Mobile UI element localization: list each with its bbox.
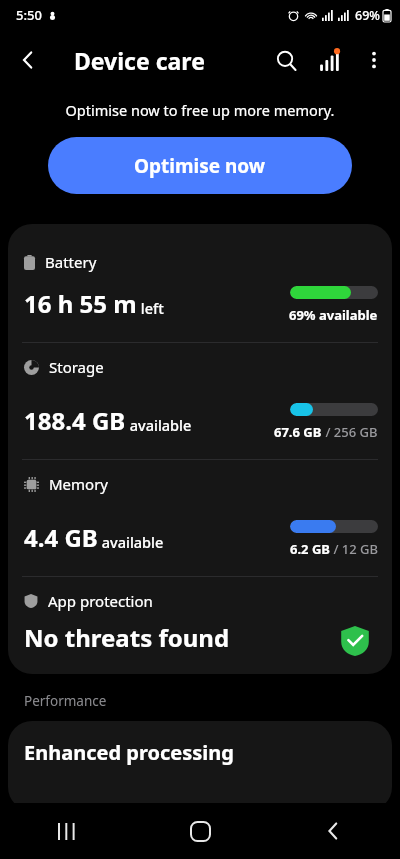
button[interactable]: Optimise now [48, 137, 352, 194]
staticText: / 12 GB [330, 540, 378, 558]
staticText: left [137, 298, 164, 318]
staticText: / 256 GB [322, 423, 378, 441]
button[interactable]: Battery [8, 238, 392, 342]
staticText: 4.4 GB [24, 521, 98, 554]
button[interactable]: Usage statistics [308, 38, 352, 82]
button[interactable]: Home [170, 803, 230, 859]
button[interactable]: Memory [8, 460, 392, 576]
staticText: 67.6 GB [274, 423, 322, 441]
button[interactable]: Back [303, 803, 363, 859]
button[interactable]: Recent apps [37, 803, 97, 859]
staticText: Memory [49, 474, 109, 494]
button[interactable]: Back [6, 38, 50, 82]
staticText: 188.4 GB [24, 404, 126, 437]
staticText: Optimise now [134, 153, 266, 179]
staticText: Device care [74, 45, 205, 76]
staticText: 5:50 [16, 6, 42, 24]
button[interactable]: Enhanced processing [8, 721, 392, 811]
staticText: available [98, 532, 164, 552]
button[interactable]: Storage [8, 343, 392, 459]
staticText: No threats found [24, 621, 230, 654]
staticText: 6.2 GB [290, 540, 330, 558]
staticText: 16 h 55 m [24, 287, 137, 320]
button[interactable]: More options [352, 38, 396, 82]
staticText: available [126, 415, 192, 435]
button[interactable]: App protection [8, 577, 392, 674]
staticText: 69% available [289, 306, 378, 324]
staticText: Optimise now to free up more memory. [0, 100, 400, 120]
staticText: Performance [24, 692, 107, 710]
staticText: App protection [48, 591, 153, 611]
button[interactable]: Search [264, 38, 308, 82]
staticText: Enhanced processing [24, 739, 234, 766]
staticText: Storage [49, 357, 104, 377]
staticText: 69% [355, 7, 380, 24]
staticText: Battery [45, 252, 97, 272]
